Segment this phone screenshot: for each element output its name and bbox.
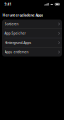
staticText: Hintergrund-Apps xyxy=(5,40,32,45)
button[interactable]: Apps entfernen xyxy=(2,48,62,57)
staticText: App-Speicher xyxy=(5,31,26,36)
staticText: Apps entfernen xyxy=(5,50,29,54)
staticText: 9:41 xyxy=(4,2,11,6)
button[interactable]: Sortieren xyxy=(2,19,62,28)
button[interactable]: Hintergrund-Apps xyxy=(2,38,62,47)
button[interactable]: App-Speicher xyxy=(2,29,62,38)
staticText: Heruntergeladene Apps xyxy=(2,13,43,17)
staticText: Sortieren xyxy=(5,22,19,26)
